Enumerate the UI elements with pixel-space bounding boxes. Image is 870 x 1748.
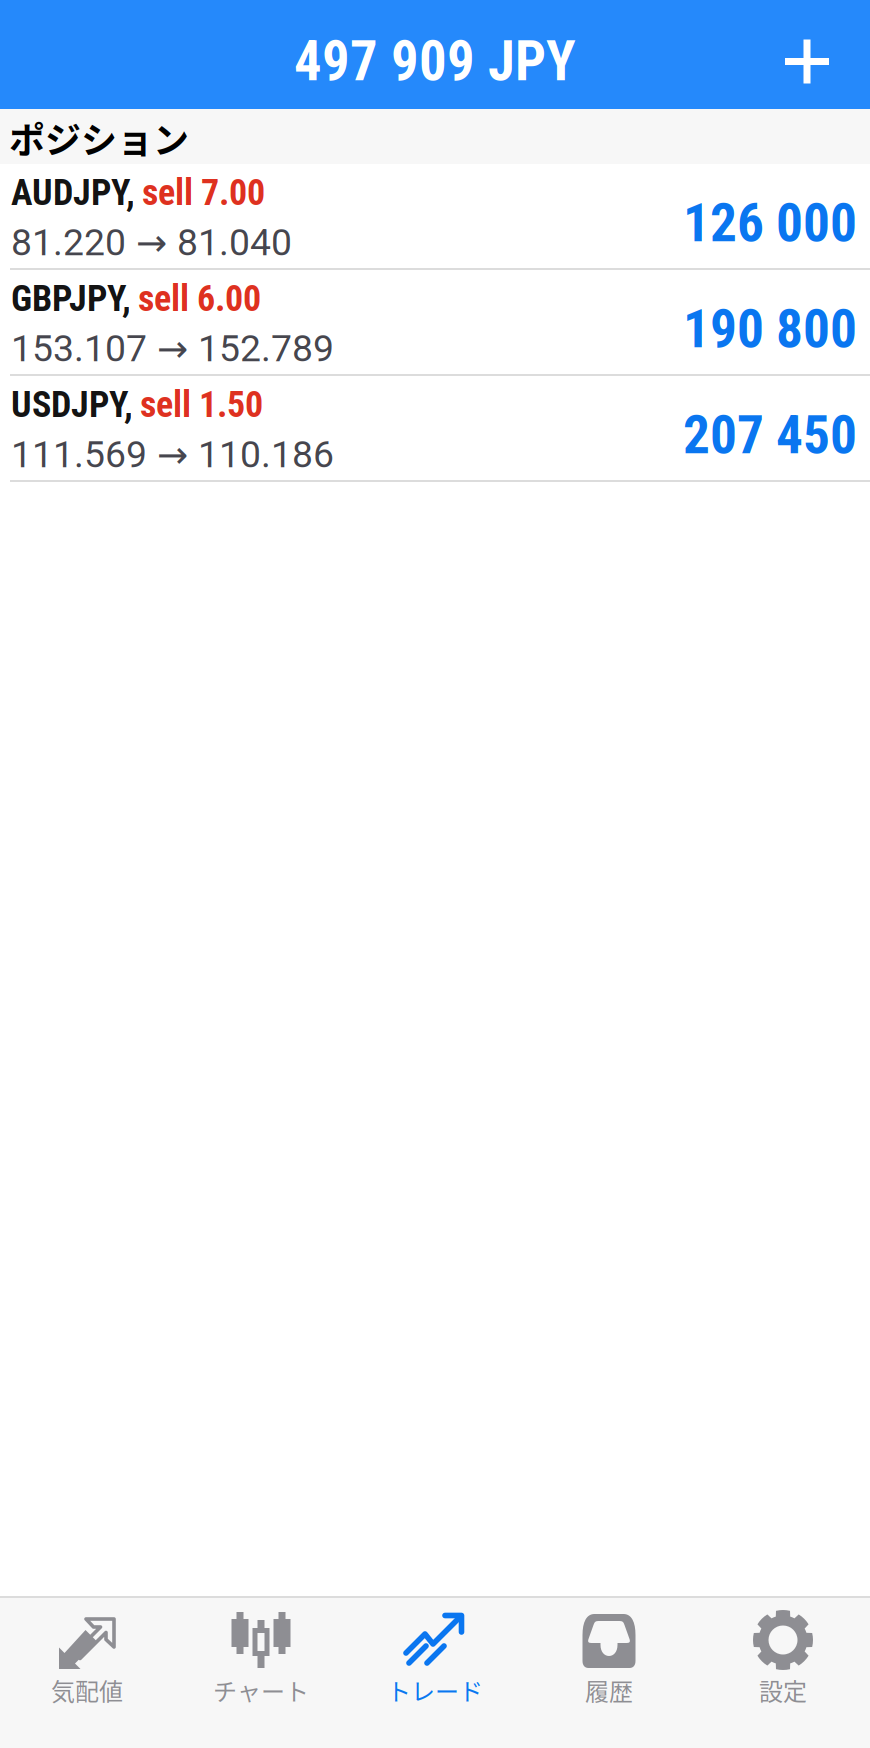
staticText: 111.569 <box>11 433 147 476</box>
staticText: 190 800 <box>683 298 857 360</box>
staticText: 81.040 <box>177 221 292 264</box>
staticText: 気配値 <box>51 1673 123 1707</box>
button[interactable]: Add <box>763 3 851 105</box>
staticText: → <box>136 221 167 264</box>
staticText: 207 450 <box>683 404 857 466</box>
button[interactable]: 設定 <box>696 1598 870 1748</box>
staticText: 履歴 <box>585 1673 633 1707</box>
staticText: → <box>157 327 188 370</box>
button[interactable]: AUDJPY, <box>0 164 870 268</box>
staticText: 152.789 <box>198 327 334 370</box>
staticText: ポジション <box>9 112 189 164</box>
button[interactable]: USDJPY, <box>0 376 870 480</box>
staticText: AUDJPY, <box>11 171 135 214</box>
staticText: 110.186 <box>198 433 334 476</box>
button[interactable]: 気配値 <box>0 1598 174 1748</box>
staticText: GBPJPY, <box>11 277 131 320</box>
staticText: 153.107 <box>11 327 147 370</box>
button[interactable]: 履歴 <box>522 1598 696 1748</box>
staticText: 設定 <box>759 1673 807 1707</box>
staticText: sell 6.00 <box>138 277 261 320</box>
staticText: USDJPY, <box>11 383 133 426</box>
staticText: sell 1.50 <box>140 383 263 426</box>
staticText: 81.220 <box>11 221 126 264</box>
button[interactable]: GBPJPY, <box>0 270 870 374</box>
staticText: トレード <box>387 1673 483 1707</box>
staticText: sell 7.00 <box>142 171 265 214</box>
button[interactable]: トレード <box>348 1598 522 1748</box>
button[interactable]: チャート <box>174 1598 348 1748</box>
staticText: 126 000 <box>683 192 857 254</box>
staticText: → <box>157 433 188 476</box>
staticText: 497 909 JPY <box>294 29 576 94</box>
staticText: チャート <box>213 1673 309 1707</box>
